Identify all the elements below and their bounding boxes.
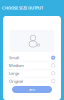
staticText: CHOOSE SIZE OUTPUT [2,5,43,11]
button[interactable]: SAVE [12,86,52,93]
staticText: Large [9,71,19,76]
button[interactable]: Small [5,54,59,61]
staticText: Medium [9,63,24,68]
staticText: SAVE [29,88,35,91]
button[interactable]: Large [5,70,59,77]
button[interactable]: Medium [5,62,59,69]
button[interactable]: Original [5,77,59,85]
staticText: Original [9,78,23,84]
staticText: Small [9,55,19,60]
